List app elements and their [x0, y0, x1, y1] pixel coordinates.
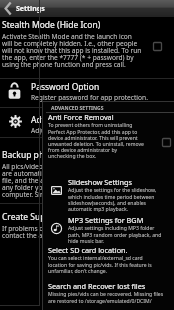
button[interactable]: Slideshow Settings: [68, 177, 160, 212]
staticText: Anti Force Removal: [48, 112, 114, 122]
button[interactable]: Select SD card location.: [48, 245, 153, 274]
button[interactable]: Stealth Mode (Hide Icon): [2, 19, 142, 69]
staticText: Adjust settings including MP3 folder pat…: [68, 225, 162, 244]
staticText: Select SD card location.: [48, 245, 128, 255]
staticText: You can select internal/external_sd card…: [48, 255, 153, 274]
button[interactable]: Password Option: [31, 81, 173, 102]
staticText: Adjust the settings for the slideshow, w…: [68, 187, 160, 212]
button[interactable]: Back: [0, 0, 16, 17]
button[interactable]: Anti Force Removal: [48, 112, 145, 159]
staticText: MP3 Settings for BGM: [68, 215, 144, 225]
staticText: Activate Stealth Mode and the launch ico…: [2, 32, 142, 69]
staticText: Slideshow Settings: [68, 177, 133, 187]
staticText: All pics/videos saved inside the applica…: [2, 162, 144, 199]
staticText: Password Option: [31, 81, 100, 93]
staticText: Backup photos/videos: [2, 149, 91, 161]
button[interactable]: Backup photos/videos: [2, 149, 144, 199]
staticText: Search and Recover lost files: [48, 281, 146, 291]
staticText: Stealth Mode (Hide Icon): [2, 19, 101, 31]
button[interactable]: Advanced Settings: [31, 114, 173, 135]
button[interactable]: Search and Recover lost files: [48, 281, 170, 304]
staticText: Adjust advanced app options.: [31, 126, 123, 135]
staticText: Advanced Settings: [31, 114, 105, 126]
button[interactable]: Toggle setting: [153, 42, 162, 51]
staticText: Create Support: [2, 211, 63, 223]
staticText: Missing pies/vids can be recovered. Miss…: [48, 291, 170, 304]
staticText: If problems occur while using this app, …: [2, 224, 144, 240]
button[interactable]: Create Support: [2, 211, 144, 240]
staticText: Settings: [16, 4, 45, 14]
button[interactable]: MP3 Settings for BGM: [68, 215, 162, 244]
button[interactable]: Toggle setting: [162, 138, 171, 147]
staticText: To prevent others from uninstalling Perf…: [48, 122, 145, 159]
staticText: Register password for app protection.: [31, 93, 148, 102]
staticText: ADVANCED SETTINGS: [51, 105, 104, 112]
